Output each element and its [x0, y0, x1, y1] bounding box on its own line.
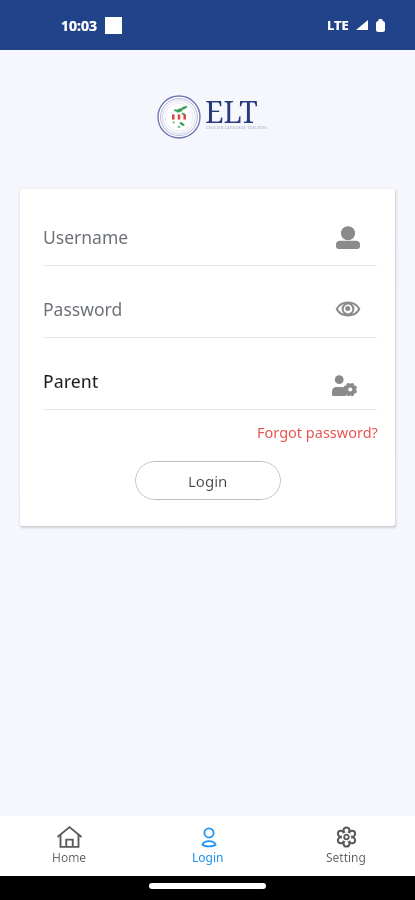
- staticText: Login: [188, 471, 228, 491]
- staticText: ELT: [205, 91, 258, 132]
- staticText: ENGLISH LANGUAGE TEACHING: [206, 125, 268, 130]
- staticText: Setting: [326, 849, 366, 865]
- button[interactable]: Login: [139, 816, 277, 876]
- button[interactable]: Username: [20, 194, 395, 266]
- button[interactable]: Parent: [20, 338, 395, 410]
- button[interactable]: Setting: [277, 816, 415, 876]
- staticText: Parent: [43, 369, 99, 393]
- button[interactable]: Login: [135, 461, 281, 500]
- staticText: Password: [43, 297, 123, 321]
- staticText: Username: [43, 225, 129, 249]
- button[interactable]: Password: [20, 266, 395, 338]
- staticText: Home: [52, 849, 87, 865]
- button[interactable]: Forgot password?: [257, 422, 378, 442]
- button[interactable]: Home: [0, 816, 139, 876]
- staticText: 10:03: [61, 16, 97, 35]
- staticText: Login: [192, 849, 224, 865]
- staticText: LTE: [327, 16, 349, 34]
